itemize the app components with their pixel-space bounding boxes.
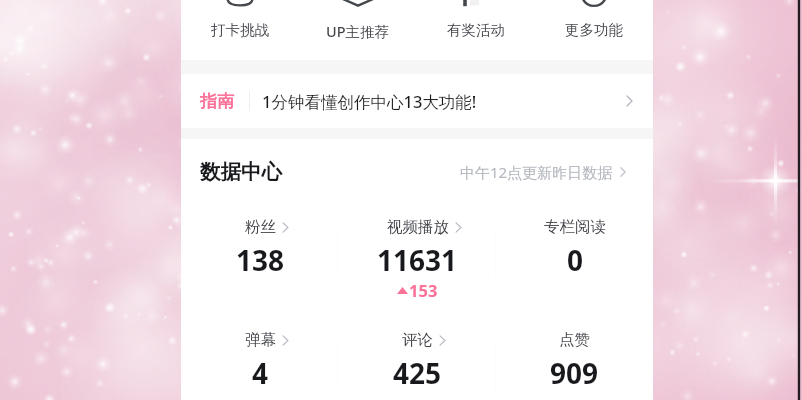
staticText: 视频播放	[387, 217, 449, 237]
staticText: 153	[409, 279, 438, 301]
staticText: 指南	[200, 91, 234, 112]
button[interactable]: 更多功能	[535, 0, 653, 60]
other: 查看指南	[626, 95, 633, 107]
staticText: 打卡挑战	[211, 21, 269, 39]
staticText: 更多功能	[565, 21, 623, 39]
staticText: UP主推荐	[326, 21, 390, 41]
staticText: 0	[567, 241, 584, 279]
button[interactable]: 视频播放	[339, 217, 496, 301]
button[interactable]: 弹幕	[181, 330, 339, 392]
staticText: 中午12点更新昨日数据	[460, 162, 613, 182]
button[interactable]: 有奖活动	[417, 0, 535, 60]
staticText: 弹幕	[245, 330, 276, 350]
button[interactable]: 中午12点更新昨日数据	[460, 162, 626, 182]
button[interactable]: 评论	[339, 330, 496, 392]
staticText: 425	[393, 354, 442, 392]
button[interactable]: UP主推荐	[299, 0, 417, 60]
staticText: 138	[236, 241, 285, 279]
staticText: 有奖活动	[447, 21, 505, 39]
staticText: 909	[550, 354, 599, 392]
staticText: 评论	[402, 330, 433, 350]
button[interactable]: 点赞	[496, 330, 653, 392]
staticText: 专栏阅读	[544, 217, 606, 237]
staticText: 数据中心	[200, 159, 282, 185]
staticText: 点赞	[559, 330, 590, 350]
button[interactable]: 专栏阅读	[496, 217, 653, 279]
button[interactable]: 指南	[181, 74, 653, 128]
button[interactable]: 打卡挑战	[181, 0, 299, 60]
staticText: 11631	[377, 241, 458, 279]
staticText: 4	[252, 354, 269, 392]
staticText: 1分钟看懂创作中心13大功能!	[262, 90, 477, 113]
button[interactable]: 粉丝	[181, 217, 339, 279]
staticText: 粉丝	[245, 217, 276, 237]
